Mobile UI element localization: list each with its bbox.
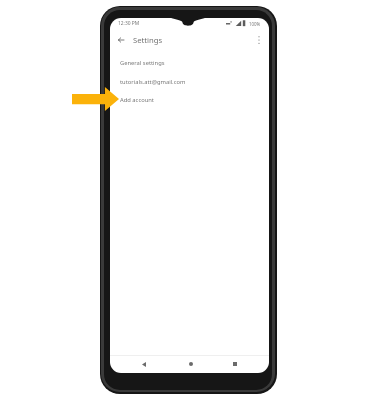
button[interactable]: Back bbox=[112, 31, 129, 49]
staticText: General settings bbox=[120, 59, 165, 67]
button[interactable]: Recent apps bbox=[227, 356, 243, 372]
button[interactable]: tutorials.att@gmail.com bbox=[110, 73, 269, 91]
staticText: Add account bbox=[120, 96, 154, 104]
button[interactable]: Back bbox=[136, 356, 152, 372]
staticText: Settings bbox=[133, 35, 163, 45]
button[interactable]: More options bbox=[251, 31, 267, 49]
staticText: tutorials.att@gmail.com bbox=[120, 78, 186, 86]
button[interactable]: Add account bbox=[110, 91, 269, 109]
staticText: 12:30 PM bbox=[118, 20, 140, 27]
button[interactable]: Home bbox=[183, 356, 199, 372]
button[interactable]: General settings bbox=[110, 54, 269, 72]
staticText: 100% bbox=[249, 21, 261, 27]
